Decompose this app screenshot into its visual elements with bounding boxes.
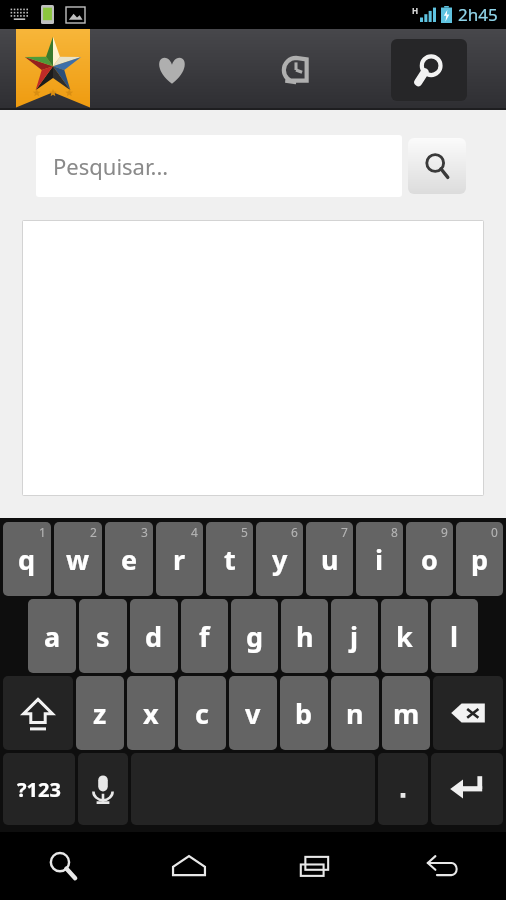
staticText: 1 xyxy=(39,524,46,540)
button[interactable]: q xyxy=(3,522,51,596)
button[interactable]: e xyxy=(105,522,153,596)
staticText: h xyxy=(296,618,314,655)
staticText: ?123 xyxy=(17,776,61,803)
staticText: Pesquisar... xyxy=(53,151,169,181)
staticText: 8 xyxy=(391,524,398,540)
button[interactable]: z xyxy=(76,676,124,750)
staticText: u xyxy=(321,541,339,578)
button[interactable]: g xyxy=(231,599,278,673)
staticText: 7 xyxy=(341,524,348,540)
button[interactable]: n xyxy=(331,676,379,750)
button[interactable]: o xyxy=(406,522,453,596)
staticText: q xyxy=(18,541,36,578)
button[interactable]: App logo xyxy=(16,29,90,110)
button[interactable]: k xyxy=(381,599,428,673)
staticText: l xyxy=(450,618,459,655)
button[interactable]: i xyxy=(356,522,403,596)
button[interactable]: y xyxy=(256,522,303,596)
staticText: p xyxy=(471,541,489,578)
button[interactable] xyxy=(22,220,484,496)
staticText: r xyxy=(173,541,186,578)
button[interactable]: Tab xyxy=(110,29,234,110)
button[interactable]: u xyxy=(306,522,353,596)
staticText: 4 xyxy=(191,524,198,540)
button[interactable]: b xyxy=(280,676,328,750)
staticText: y xyxy=(272,541,288,578)
staticText: k xyxy=(396,618,413,655)
button[interactable]: Period xyxy=(378,753,428,825)
button[interactable]: a xyxy=(28,599,76,673)
staticText: 2 xyxy=(90,524,97,540)
staticText: d xyxy=(145,618,163,655)
staticText: 3 xyxy=(141,524,148,540)
button[interactable]: Shift xyxy=(3,676,73,750)
button[interactable]: d xyxy=(130,599,178,673)
button[interactable]: x xyxy=(127,676,175,750)
button[interactable]: f xyxy=(181,599,228,673)
staticText: 0 xyxy=(491,524,498,540)
button[interactable]: Search tab xyxy=(391,39,467,101)
button[interactable]: r xyxy=(156,522,203,596)
button[interactable]: h xyxy=(281,599,328,673)
button[interactable]: Tab xyxy=(234,29,358,110)
staticText: t xyxy=(224,541,236,578)
button[interactable]: s xyxy=(79,599,127,673)
button[interactable]: v xyxy=(229,676,277,750)
staticText: f xyxy=(199,618,210,655)
staticText: w xyxy=(66,541,90,578)
button[interactable]: Search xyxy=(0,832,126,900)
button[interactable]: p xyxy=(456,522,503,596)
staticText: m xyxy=(393,695,420,732)
staticText: 5 xyxy=(241,524,248,540)
button[interactable]: w xyxy=(54,522,102,596)
button[interactable]: Home xyxy=(126,832,252,900)
button[interactable]: Search xyxy=(408,138,466,194)
button[interactable]: Back xyxy=(379,832,506,900)
staticText: s xyxy=(96,618,110,655)
staticText: g xyxy=(246,618,264,655)
staticText: v xyxy=(245,695,261,732)
staticText: n xyxy=(346,695,364,732)
button[interactable]: t xyxy=(206,522,253,596)
button[interactable]: Pesquisar... xyxy=(36,135,402,197)
staticText: c xyxy=(195,695,209,732)
staticText: 9 xyxy=(441,524,448,540)
button[interactable]: Enter xyxy=(431,753,503,825)
staticText: e xyxy=(121,541,138,578)
staticText: 6 xyxy=(291,524,298,540)
button[interactable]: Backspace xyxy=(433,676,503,750)
staticText: b xyxy=(295,695,313,732)
staticText: z xyxy=(93,695,107,732)
staticText: 2h45 xyxy=(458,3,498,26)
button[interactable]: Recents xyxy=(252,832,379,900)
staticText: x xyxy=(143,695,159,732)
staticText: a xyxy=(44,618,61,655)
staticText: j xyxy=(350,618,359,655)
button[interactable]: ?123 xyxy=(3,753,75,825)
button[interactable]: l xyxy=(431,599,478,673)
button[interactable]: Voice input xyxy=(78,753,128,825)
button[interactable]: m xyxy=(382,676,430,750)
button[interactable]: c xyxy=(178,676,226,750)
staticText: H xyxy=(412,5,419,16)
staticText: o xyxy=(421,541,438,578)
staticText: i xyxy=(375,541,384,578)
button[interactable]: j xyxy=(331,599,378,673)
